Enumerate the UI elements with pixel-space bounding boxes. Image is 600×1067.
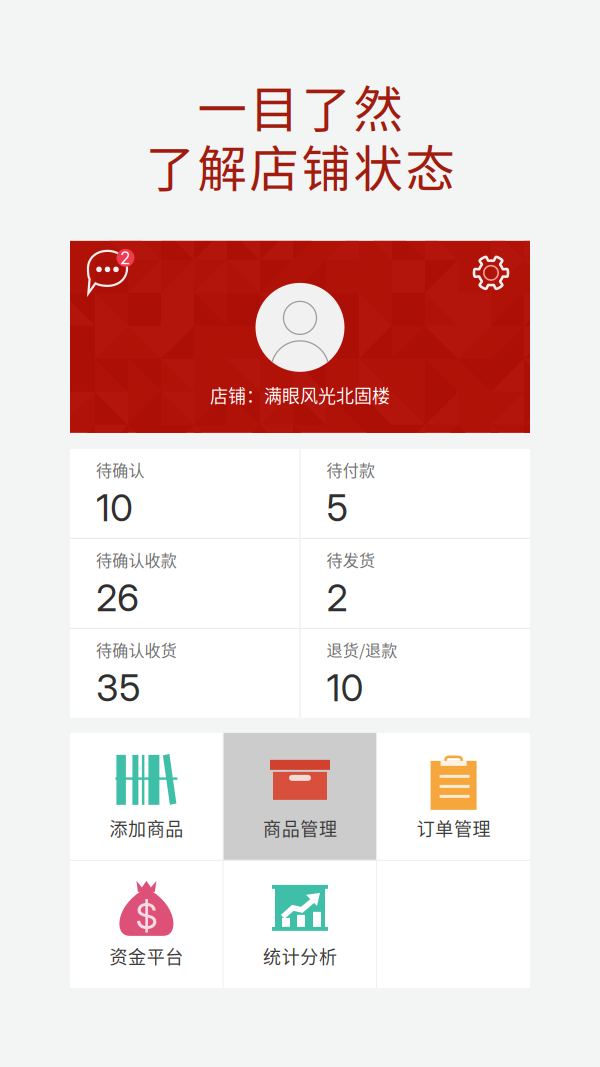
button[interactable]: 待确认收款 xyxy=(70,539,299,628)
staticText: 待发货 xyxy=(326,548,375,571)
staticText: 待确认收款 xyxy=(96,548,177,571)
staticText: 待确认收货 xyxy=(96,638,177,661)
staticText: 一目了然 xyxy=(197,70,402,141)
button[interactable]: $ xyxy=(70,861,223,988)
staticText: 待确认 xyxy=(96,458,144,481)
button[interactable]: 商品管理 xyxy=(224,733,376,860)
staticText: 10 xyxy=(96,485,133,530)
button[interactable]: 待确认 xyxy=(70,449,299,538)
button[interactable]: 添加商品 xyxy=(70,733,223,860)
button[interactable]: 统计分析 xyxy=(224,861,376,988)
staticText: 商品管理 xyxy=(263,815,337,841)
button[interactable]: Settings xyxy=(472,254,510,292)
staticText: 资金平台 xyxy=(109,943,183,969)
staticText: 35 xyxy=(96,665,141,710)
staticText: 5 xyxy=(326,485,348,530)
staticText: 10 xyxy=(326,665,363,710)
staticText: 添加商品 xyxy=(109,815,183,841)
staticText: 店铺：满眼风光北固楼 xyxy=(210,382,390,408)
button[interactable]: 待确认收货 xyxy=(70,629,299,718)
staticText: 了解店铺状态 xyxy=(145,129,454,201)
staticText: 2 xyxy=(120,247,131,268)
staticText: 退货/退款 xyxy=(326,638,397,661)
staticText: 2 xyxy=(326,575,347,620)
button[interactable]: 退货/退款 xyxy=(300,629,530,718)
staticText: 待付款 xyxy=(326,458,375,481)
button[interactable]: 待发货 xyxy=(300,539,530,628)
staticText: 26 xyxy=(96,575,139,620)
staticText: $ xyxy=(135,894,157,938)
staticText: 订单管理 xyxy=(417,815,490,841)
button[interactable]: 订单管理 xyxy=(377,733,530,860)
button[interactable]: 待付款 xyxy=(300,449,530,538)
button[interactable]: Messages xyxy=(86,249,135,297)
staticText: 统计分析 xyxy=(263,943,337,969)
